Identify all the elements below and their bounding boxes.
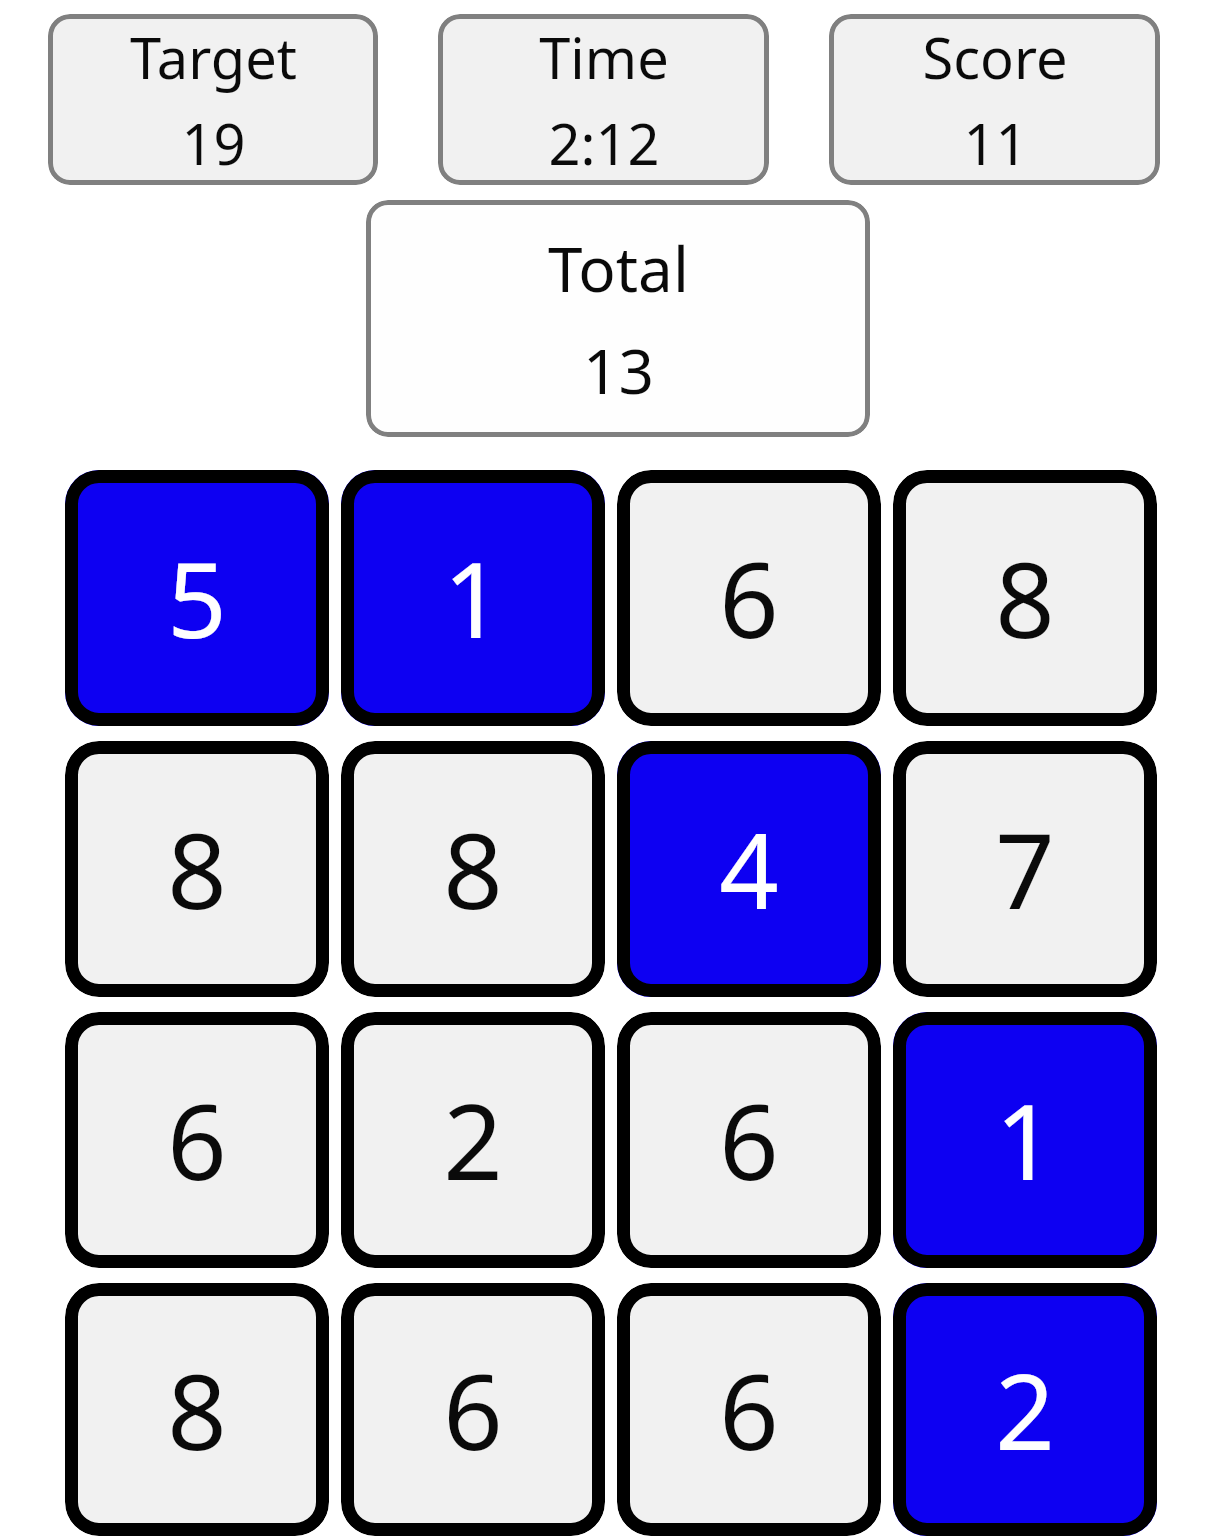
- button[interactable]: 4: [617, 741, 881, 997]
- button[interactable]: 5: [65, 470, 329, 726]
- staticText: 6: [719, 527, 779, 669]
- button[interactable]: 6: [617, 1283, 881, 1536]
- staticText: 6: [719, 1339, 779, 1481]
- staticText: 13: [583, 328, 654, 412]
- staticText: Target: [130, 19, 297, 95]
- staticText: 19: [181, 105, 246, 181]
- staticText: 6: [443, 1339, 503, 1481]
- staticText: 2: [995, 1339, 1055, 1481]
- button[interactable]: 6: [617, 1012, 881, 1268]
- button[interactable]: 8: [341, 741, 605, 997]
- staticText: 8: [167, 1339, 227, 1481]
- button[interactable]: 8: [893, 470, 1157, 726]
- staticText: 2:12: [548, 105, 660, 181]
- button[interactable]: 6: [617, 470, 881, 726]
- button[interactable]: 8: [65, 1283, 329, 1536]
- button[interactable]: 6: [65, 1012, 329, 1268]
- staticText: 6: [167, 1069, 227, 1211]
- staticText: 8: [167, 798, 227, 940]
- button[interactable]: Score: [829, 14, 1160, 185]
- staticText: 1: [443, 527, 503, 669]
- staticText: Time: [539, 19, 669, 95]
- staticText: 2: [443, 1069, 503, 1211]
- staticText: Score: [922, 19, 1068, 95]
- button[interactable]: 7: [893, 741, 1157, 997]
- staticText: 8: [443, 798, 503, 940]
- staticText: 7: [995, 798, 1055, 940]
- staticText: 4: [719, 798, 779, 940]
- button[interactable]: 2: [893, 1283, 1157, 1536]
- button[interactable]: Target: [48, 14, 378, 185]
- staticText: Total: [548, 226, 689, 310]
- button[interactable]: 1: [893, 1012, 1157, 1268]
- staticText: 11: [963, 105, 1028, 181]
- staticText: 8: [995, 527, 1055, 669]
- button[interactable]: Time: [438, 14, 769, 185]
- button[interactable]: 8: [65, 741, 329, 997]
- button[interactable]: 2: [341, 1012, 605, 1268]
- button[interactable]: 6: [341, 1283, 605, 1536]
- button[interactable]: 1: [341, 470, 605, 726]
- staticText: 5: [167, 527, 227, 669]
- staticText: 1: [995, 1069, 1055, 1211]
- button[interactable]: Total: [366, 200, 870, 437]
- staticText: 6: [719, 1069, 779, 1211]
